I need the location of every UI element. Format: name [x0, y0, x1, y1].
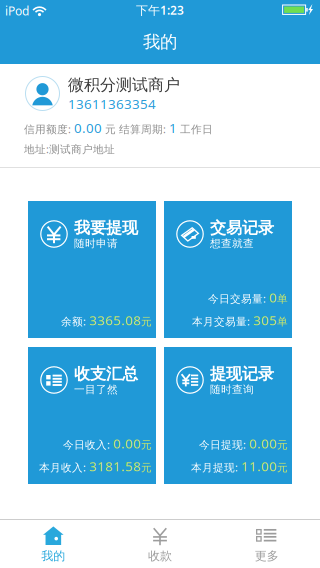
staticText: 0: [269, 289, 277, 306]
staticText: 元: [141, 438, 152, 452]
staticText: 元: [141, 315, 152, 328]
button[interactable]: 提现记录: [164, 347, 292, 484]
staticText: 0.00: [249, 435, 277, 452]
staticText: 提现记录: [210, 364, 274, 384]
staticText: 我的: [143, 31, 177, 53]
staticText: 3365.08: [89, 311, 141, 329]
staticText: 元: [277, 438, 288, 452]
staticText: iPod: [5, 3, 29, 19]
button[interactable]: 更多: [213, 520, 320, 568]
staticText: 余额:: [61, 314, 89, 328]
staticText: 今日提现:: [199, 437, 249, 452]
staticText: 元: [102, 123, 119, 136]
staticText: 随时申请: [74, 237, 118, 250]
button[interactable]: 收款: [107, 520, 213, 568]
staticText: 元: [141, 461, 152, 474]
staticText: 结算周期:: [119, 122, 169, 136]
staticText: 13611363354: [68, 95, 156, 113]
staticText: 0.00: [74, 119, 102, 137]
staticText: 305: [253, 311, 277, 329]
staticText: 11.00: [241, 457, 277, 475]
staticText: 今日收入:: [63, 437, 113, 452]
staticText: 3181.58: [89, 457, 141, 475]
staticText: 更多: [255, 549, 279, 563]
staticText: 我要提现: [74, 218, 138, 238]
staticText: 0.00: [113, 435, 141, 452]
staticText: 收款: [148, 549, 172, 563]
button[interactable]: 我要提现: [28, 201, 156, 338]
staticText: 随时查询: [210, 383, 254, 396]
staticText: 单: [277, 292, 288, 306]
staticText: 我的: [41, 549, 65, 563]
button[interactable]: 收支汇总: [28, 347, 156, 484]
staticText: 微积分测试商户: [68, 75, 180, 95]
staticText: 工作日: [177, 123, 213, 136]
staticText: 想查就查: [210, 237, 254, 250]
staticText: 单: [277, 315, 288, 328]
staticText: 1: [169, 119, 177, 137]
button[interactable]: 交易记录: [164, 201, 292, 338]
staticText: 一目了然: [74, 383, 118, 396]
staticText: 本月提现:: [191, 460, 241, 474]
staticText: 下午1:23: [136, 2, 184, 18]
staticText: 今日交易量:: [208, 291, 269, 306]
staticText: 信用额度:: [24, 122, 74, 136]
staticText: 元: [277, 461, 288, 474]
staticText: 本月收入:: [39, 460, 89, 474]
staticText: 收支汇总: [74, 364, 138, 384]
staticText: 交易记录: [210, 218, 274, 238]
button[interactable]: 我的: [0, 520, 107, 568]
staticText: 本月交易量:: [192, 314, 253, 328]
staticText: 地址:测试商户地址: [24, 142, 115, 156]
